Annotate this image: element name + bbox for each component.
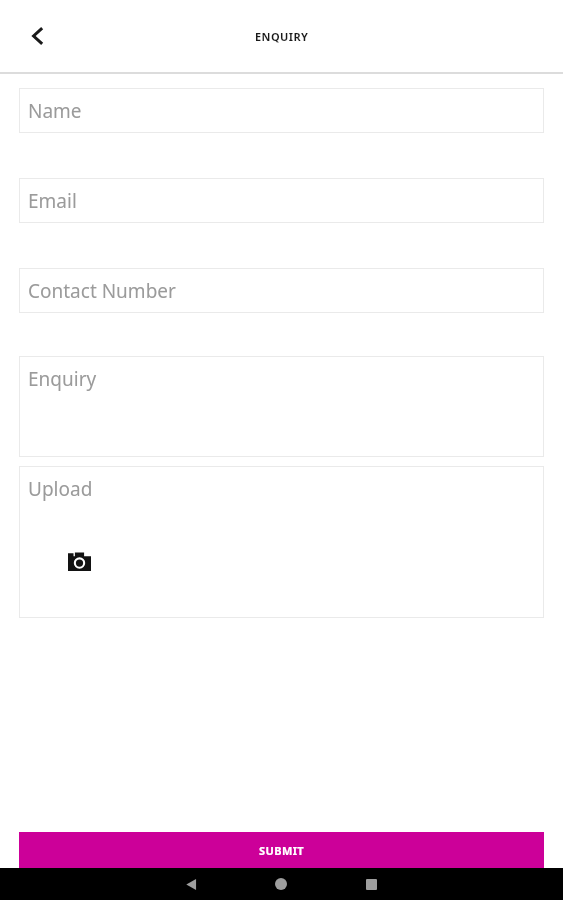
staticText: Name xyxy=(28,98,82,124)
button[interactable]: Home xyxy=(265,868,297,900)
button[interactable]: Name xyxy=(19,88,544,133)
button[interactable]: Email xyxy=(19,178,544,223)
button[interactable]: Back xyxy=(14,12,62,60)
button[interactable]: Recent apps xyxy=(355,868,387,900)
button[interactable]: Upload xyxy=(19,466,544,618)
staticText: SUBMIT xyxy=(259,843,305,858)
button[interactable]: Upload photo xyxy=(62,544,96,578)
button[interactable]: Back xyxy=(175,868,207,900)
button[interactable]: Enquiry xyxy=(19,356,544,457)
staticText: Contact Number xyxy=(28,278,176,304)
button[interactable]: Contact Number xyxy=(19,268,544,313)
staticText: Enquiry xyxy=(28,366,97,392)
staticText: Upload xyxy=(28,476,93,502)
button[interactable]: SUBMIT xyxy=(19,832,544,868)
staticText: Email xyxy=(28,188,77,214)
staticText: ENQUIRY xyxy=(255,29,309,44)
